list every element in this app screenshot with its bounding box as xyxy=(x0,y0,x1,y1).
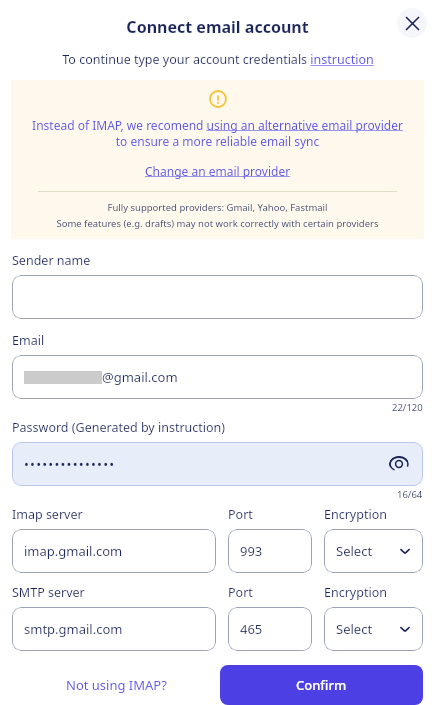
button[interactable]: smtp.gmail.com xyxy=(12,607,216,651)
staticText: imap.gmail.com xyxy=(24,542,123,560)
staticText: Instead of IMAP, we recomend using an al… xyxy=(19,117,416,150)
button[interactable]: 993 xyxy=(228,529,312,573)
staticText: ••••••••••••••• xyxy=(24,455,116,473)
staticText: Encryption xyxy=(324,506,387,523)
staticText: Some features (e.g. drafts) may not work… xyxy=(11,217,424,230)
staticText: Imap server xyxy=(12,506,83,523)
staticText: Sender name xyxy=(12,252,91,269)
staticText: Password (Generated by instruction) xyxy=(12,419,226,436)
staticText: 16/64 xyxy=(397,488,423,501)
staticText: Fully supported providers: Gmail, Yahoo,… xyxy=(11,201,424,214)
button[interactable]: Not using IMAP? xyxy=(12,665,220,705)
button[interactable]: Change an email provider xyxy=(145,163,291,179)
button[interactable]: @gmail.com xyxy=(12,355,423,399)
button[interactable]: ••••••••••••••• xyxy=(12,442,423,486)
staticText: Encryption xyxy=(324,584,387,601)
staticText: Email xyxy=(12,332,45,349)
staticText: smtp.gmail.com xyxy=(24,620,123,638)
staticText: Confirm xyxy=(296,676,347,694)
staticText: To continue type your account credential… xyxy=(62,51,374,68)
staticText: Connect email account xyxy=(0,16,435,38)
staticText: Select xyxy=(336,542,373,560)
staticText: Not using IMAP? xyxy=(66,676,167,694)
button[interactable]: 465 xyxy=(228,607,312,651)
button[interactable]: imap.gmail.com xyxy=(12,529,216,573)
staticText: Port xyxy=(228,506,253,523)
staticText: @gmail.com xyxy=(102,368,178,386)
button[interactable]: Confirm xyxy=(220,665,423,705)
button[interactable]: Close xyxy=(397,8,427,38)
staticText: Change an email provider xyxy=(145,163,291,179)
button[interactable] xyxy=(12,275,423,319)
staticText: Port xyxy=(228,584,253,601)
staticText: 465 xyxy=(240,620,263,638)
staticText: SMTP server xyxy=(12,584,85,601)
button[interactable]: Show password xyxy=(387,452,411,476)
staticText: 993 xyxy=(240,542,263,560)
button[interactable]: Select xyxy=(324,607,423,651)
button[interactable]: Select xyxy=(324,529,423,573)
staticText: 22/120 xyxy=(392,401,423,414)
staticText: Select xyxy=(336,620,373,638)
